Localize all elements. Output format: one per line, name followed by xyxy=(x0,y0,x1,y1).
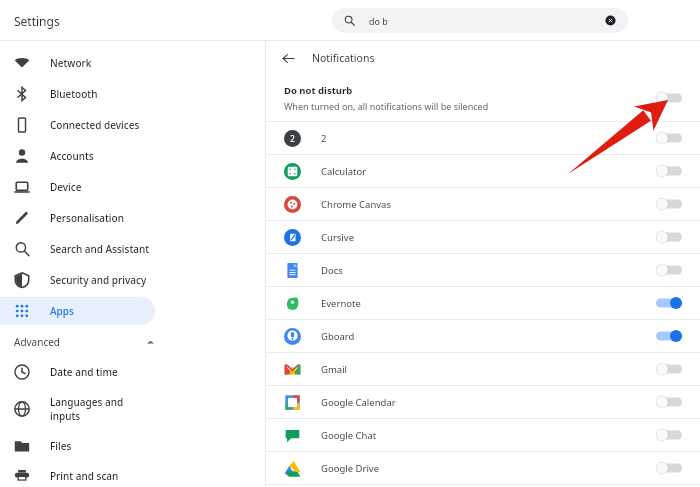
staticText: Advanced xyxy=(14,335,60,349)
button[interactable]: Toggle off xyxy=(656,165,682,177)
staticText: Do not disturb xyxy=(284,84,353,97)
staticText: Network xyxy=(50,56,92,70)
button[interactable]: Apps xyxy=(0,297,155,325)
staticText: Security and privacy xyxy=(50,273,147,287)
staticText: Personalisation xyxy=(50,211,124,225)
button[interactable]: Toggle off xyxy=(656,396,682,408)
button[interactable]: Device xyxy=(0,173,155,201)
staticText: Chrome Canvas xyxy=(321,198,391,211)
button[interactable]: Date and time xyxy=(0,358,155,386)
staticText: 2 xyxy=(321,132,327,145)
button[interactable]: Back xyxy=(278,48,298,68)
button[interactable]: Toggle off xyxy=(656,132,682,144)
button[interactable]: Chrome Canvas xyxy=(266,188,700,220)
staticText: Accounts xyxy=(50,149,94,163)
staticText: Languages and inputs xyxy=(50,395,155,423)
button[interactable]: Do not disturb xyxy=(266,74,700,121)
button[interactable]: Toggle off xyxy=(656,429,682,441)
button[interactable]: Files xyxy=(0,432,155,460)
staticText: Evernote xyxy=(321,297,361,310)
staticText: Docs xyxy=(321,264,343,277)
button[interactable]: 2 xyxy=(266,122,700,154)
button[interactable]: Toggle off xyxy=(656,92,682,104)
button[interactable]: Google Drive xyxy=(266,452,700,484)
staticText: Cursive xyxy=(321,231,354,244)
staticText: Print and scan xyxy=(50,469,119,481)
button[interactable]: Clear search xyxy=(605,15,616,26)
button[interactable]: do b xyxy=(332,8,628,33)
button[interactable]: Print and scan xyxy=(0,463,155,487)
staticText: 2 xyxy=(290,133,295,144)
button[interactable]: Evernote xyxy=(266,287,700,319)
staticText: do b xyxy=(369,15,388,27)
button[interactable]: Google Calendar xyxy=(266,386,700,418)
staticText: Notifications xyxy=(312,51,375,65)
button[interactable]: Security and privacy xyxy=(0,266,155,294)
staticText: Gmail xyxy=(321,363,348,376)
button[interactable]: Toggle on xyxy=(656,330,682,342)
staticText: Settings xyxy=(14,13,60,29)
button[interactable]: Network xyxy=(0,49,155,77)
button[interactable]: Languages and inputs xyxy=(0,389,155,429)
staticText: Date and time xyxy=(50,365,118,379)
staticText: Google Calendar xyxy=(321,396,396,409)
staticText: When turned on, all notifications will b… xyxy=(284,100,489,112)
staticText: Bluetooth xyxy=(50,87,98,101)
button[interactable]: Calculator xyxy=(266,155,700,187)
button[interactable]: Toggle off xyxy=(656,264,682,276)
button[interactable]: Search and Assistant xyxy=(0,235,155,263)
button[interactable]: Personalisation xyxy=(0,204,155,232)
staticText: Connected devices xyxy=(50,118,140,132)
button[interactable]: Toggle on xyxy=(656,297,682,309)
button[interactable]: Advanced xyxy=(0,329,265,355)
button[interactable]: Cursive xyxy=(266,221,700,253)
button[interactable]: Toggle off xyxy=(656,363,682,375)
button[interactable]: Gboard xyxy=(266,320,700,352)
staticText: Google Drive xyxy=(321,462,380,475)
staticText: Calculator xyxy=(321,165,367,178)
button[interactable]: Gmail xyxy=(266,353,700,385)
staticText: Files xyxy=(50,439,72,453)
button[interactable]: Accounts xyxy=(0,142,155,170)
button[interactable]: Toggle off xyxy=(656,231,682,243)
staticText: Gboard xyxy=(321,330,355,343)
staticText: Apps xyxy=(50,304,74,318)
staticText: Google Chat xyxy=(321,429,377,442)
button[interactable]: Toggle off xyxy=(656,198,682,210)
staticText: Search and Assistant xyxy=(50,242,150,256)
button[interactable]: Connected devices xyxy=(0,111,155,139)
button[interactable]: Toggle off xyxy=(656,462,682,474)
button[interactable]: Docs xyxy=(266,254,700,286)
button[interactable]: Bluetooth xyxy=(0,80,155,108)
button[interactable]: Google Chat xyxy=(266,419,700,451)
staticText: Device xyxy=(50,180,82,194)
